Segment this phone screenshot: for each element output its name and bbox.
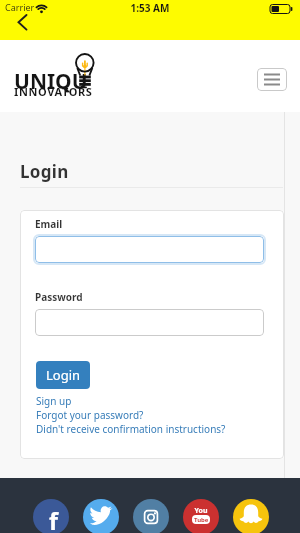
button[interactable] (35, 236, 264, 263)
button[interactable] (35, 309, 264, 336)
button[interactable]: Forgot your password? (20, 210, 128, 224)
staticText: Tube (194, 516, 209, 524)
button[interactable]: You (183, 499, 219, 533)
button[interactable] (257, 68, 287, 91)
button[interactable]: Didn't receive confirmation instructions… (20, 210, 210, 224)
button[interactable] (83, 499, 119, 533)
staticText: UNIQU (14, 67, 88, 96)
staticText: Login (20, 160, 69, 183)
button[interactable]: Login (36, 361, 90, 389)
staticText: Password (35, 290, 83, 304)
staticText: f (49, 505, 58, 533)
button[interactable]: f (33, 499, 69, 533)
staticText: Login (46, 366, 81, 384)
staticText: Email (35, 217, 63, 231)
staticText: You (183, 506, 219, 516)
button[interactable] (233, 499, 269, 533)
staticText: INNOVATORS (14, 84, 93, 99)
button[interactable]: Sign up (20, 210, 56, 224)
staticText: Carrier (5, 1, 35, 13)
staticText: 1:53 AM (0, 1, 300, 15)
button[interactable] (133, 499, 169, 533)
